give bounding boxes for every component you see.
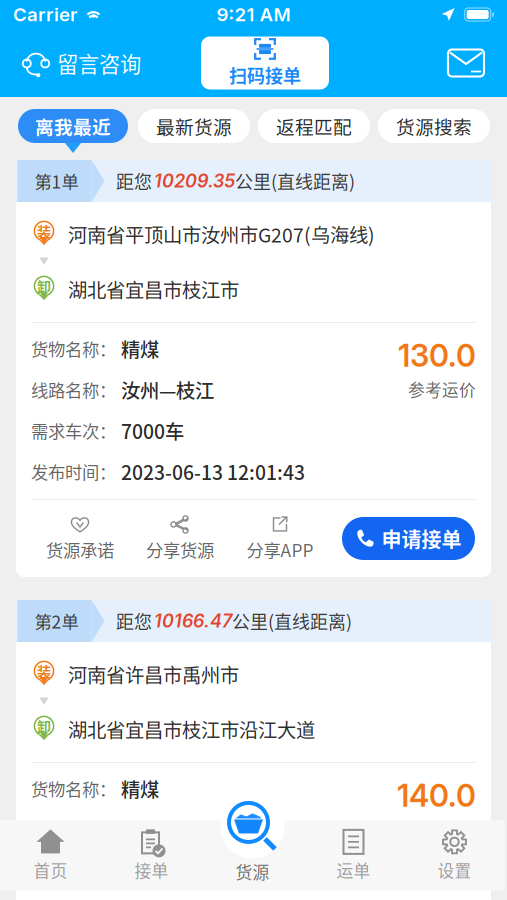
staticText: 设置 — [437, 858, 471, 882]
staticText: 9:21 AM — [216, 3, 290, 26]
staticText: 货物名称： — [31, 776, 116, 801]
staticText: 距您 — [116, 168, 152, 194]
staticText: 货源 — [235, 859, 269, 883]
staticText: 汝州—枝江 — [121, 375, 214, 403]
staticText: 参考运价 — [408, 377, 476, 401]
staticText: 申请接单 — [381, 524, 461, 553]
button[interactable]: 最新货源 — [138, 109, 250, 143]
staticText: 运单 — [336, 858, 370, 882]
staticText: 7000车 — [121, 416, 184, 444]
staticText: 湖北省宜昌市枝江市沿江大道 — [68, 715, 315, 743]
staticText: 精煤 — [121, 774, 159, 802]
staticText: 公里(直线距离) — [232, 608, 352, 634]
staticText: 扫码接单 — [229, 62, 301, 88]
staticText: 装 — [37, 661, 51, 681]
staticText: 参考运价 — [408, 817, 476, 841]
staticText: 货源承诺 — [46, 537, 114, 562]
button[interactable]: 设置 — [404, 820, 505, 890]
button[interactable]: 分享货源 — [130, 512, 230, 564]
staticText: 货源搜索 — [396, 112, 472, 139]
button[interactable]: 首页 — [0, 820, 101, 890]
staticText: 发布时间： — [31, 459, 116, 484]
staticText: 首页 — [33, 858, 67, 882]
staticText: 货物名称： — [31, 336, 116, 361]
button[interactable]: 货源搜索 — [378, 109, 490, 143]
staticText: 需求车次： — [31, 418, 116, 443]
staticText: 留言咨询 — [57, 48, 141, 78]
staticText: 装 — [37, 221, 51, 241]
button[interactable]: 申请接单 — [342, 517, 475, 560]
button[interactable]: 留言咨询 — [0, 42, 151, 84]
staticText: 需求车次： — [31, 858, 116, 883]
staticText: 湖北省宜昌市枝江市 — [68, 275, 239, 303]
staticText: 卸 — [37, 716, 51, 736]
staticText: 最新货源 — [156, 112, 232, 139]
staticText: 返程匹配 — [276, 112, 352, 139]
staticText: 精煤 — [121, 334, 159, 362]
staticText: 第2单 — [34, 608, 78, 634]
button[interactable]: 扫码接单 — [201, 36, 329, 89]
staticText: 6000车 — [121, 856, 184, 884]
button[interactable]: 货源 — [202, 794, 303, 883]
button[interactable]: 分享APP — [230, 512, 330, 564]
staticText: 接单 — [134, 858, 168, 882]
button[interactable]: 接单 — [101, 820, 202, 890]
staticText: 10166.47 — [154, 610, 232, 632]
staticText: 卸 — [37, 276, 51, 296]
button[interactable]: Messages — [437, 42, 507, 83]
staticText: 130.0 — [398, 337, 476, 374]
button[interactable]: 返程匹配 — [258, 109, 370, 143]
staticText: 分享APP — [246, 537, 313, 562]
staticText: Carrier — [13, 3, 77, 26]
staticText: 距您 — [116, 608, 152, 634]
staticText: 河南省许昌市禹州市 — [68, 660, 239, 688]
staticText: 第1单 — [34, 168, 78, 194]
staticText: 2023-06-13 12:01:43 — [121, 457, 305, 485]
staticText: 河南省平顶山市汝州市G207(乌海线) — [68, 220, 375, 248]
staticText: 禹州—枝江 — [121, 815, 214, 843]
staticText: 线路名称： — [31, 817, 116, 842]
button[interactable]: 运单 — [303, 820, 404, 890]
staticText: 公里(直线距离) — [235, 168, 355, 194]
staticText: 分享货源 — [146, 537, 214, 562]
button[interactable]: 货源承诺 — [30, 512, 130, 564]
staticText: 10209.35 — [154, 170, 235, 192]
staticText: 线路名称： — [31, 377, 116, 402]
staticText: 离我最近 — [35, 112, 111, 139]
button[interactable]: 离我最近 — [18, 109, 128, 153]
staticText: 140.0 — [397, 777, 476, 814]
